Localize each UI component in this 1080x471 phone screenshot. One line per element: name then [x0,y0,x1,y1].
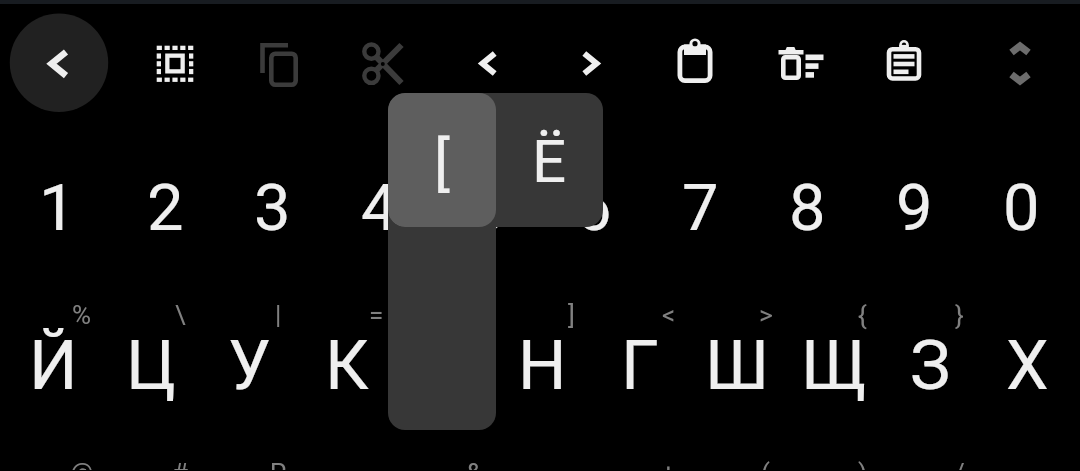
button[interactable]: Move cursor up or down [970,14,1070,114]
staticText: Й [29,326,78,406]
button[interactable]: Paste [645,14,745,114]
button[interactable]: Clear clipboard [749,14,849,114]
staticText: { [858,300,867,330]
button[interactable]: Ё [496,93,603,227]
staticText: 5 [468,170,505,246]
staticText: & [466,458,483,470]
staticText: 9 [896,170,933,246]
button[interactable]: 5 [433,160,540,255]
button[interactable]: 4 [326,160,433,255]
staticText: У [228,326,271,406]
button[interactable]: З [882,318,979,413]
staticText: Щ [801,326,867,406]
button[interactable]: 9 [861,160,968,255]
button[interactable]: Move cursor right [541,14,641,114]
button[interactable]: У [200,318,298,413]
staticText: % [72,300,92,330]
staticText: > [759,300,773,330]
staticText: } [955,300,964,330]
staticText: ( [761,458,770,470]
button[interactable]: Х [979,318,1076,413]
staticText: = [369,300,384,330]
button[interactable]: Г [591,318,688,413]
staticText: Ш [705,326,769,406]
button[interactable]: [ [388,93,496,227]
staticText: ) [858,458,868,470]
button[interactable]: 1 [3,160,111,255]
staticText: # [172,458,189,470]
staticText: ₽ [269,458,287,470]
button[interactable]: Select all [125,14,225,114]
button[interactable]: Й [4,318,102,413]
staticText: | [275,300,282,330]
staticText: ] [568,300,575,330]
button[interactable]: 0 [968,160,1075,255]
staticText: 7 [682,170,719,246]
button[interactable]: 8 [754,160,861,255]
button[interactable]: 2 [111,160,219,255]
staticText: Х [1006,326,1049,406]
staticText: + [661,458,676,470]
staticText: \ [175,300,186,330]
staticText: 4 [361,170,398,246]
staticText: З [910,326,951,406]
staticText: Г [621,326,659,406]
button[interactable]: Clipboard [854,14,954,114]
staticText: 6 [575,170,612,246]
staticText: 1 [39,170,76,246]
staticText: 2 [147,170,184,246]
staticText: Ц [126,326,176,406]
button[interactable]: Н [494,318,591,413]
staticText: [ [434,128,450,198]
button[interactable]: Щ [785,318,882,413]
staticText: @ [70,458,94,470]
button[interactable]: 6 [540,160,647,255]
staticText: 8 [789,170,826,246]
button[interactable]: 3 [219,160,326,255]
button[interactable]: Move cursor left [437,14,537,114]
button[interactable]: Ш [688,318,785,413]
button[interactable]: 7 [647,160,754,255]
button[interactable]: Back [8,14,108,114]
staticText: 0 [1003,170,1040,246]
staticText: / [954,458,965,470]
staticText: Н [518,326,567,406]
staticText: < [662,300,676,330]
button[interactable]: Ц [102,318,200,413]
button[interactable]: Copy [228,14,328,114]
staticText: 3 [254,170,291,246]
button[interactable]: К [298,318,396,413]
staticText: Ё [532,126,567,196]
staticText: К [325,326,369,406]
button[interactable]: Cut [334,14,434,114]
